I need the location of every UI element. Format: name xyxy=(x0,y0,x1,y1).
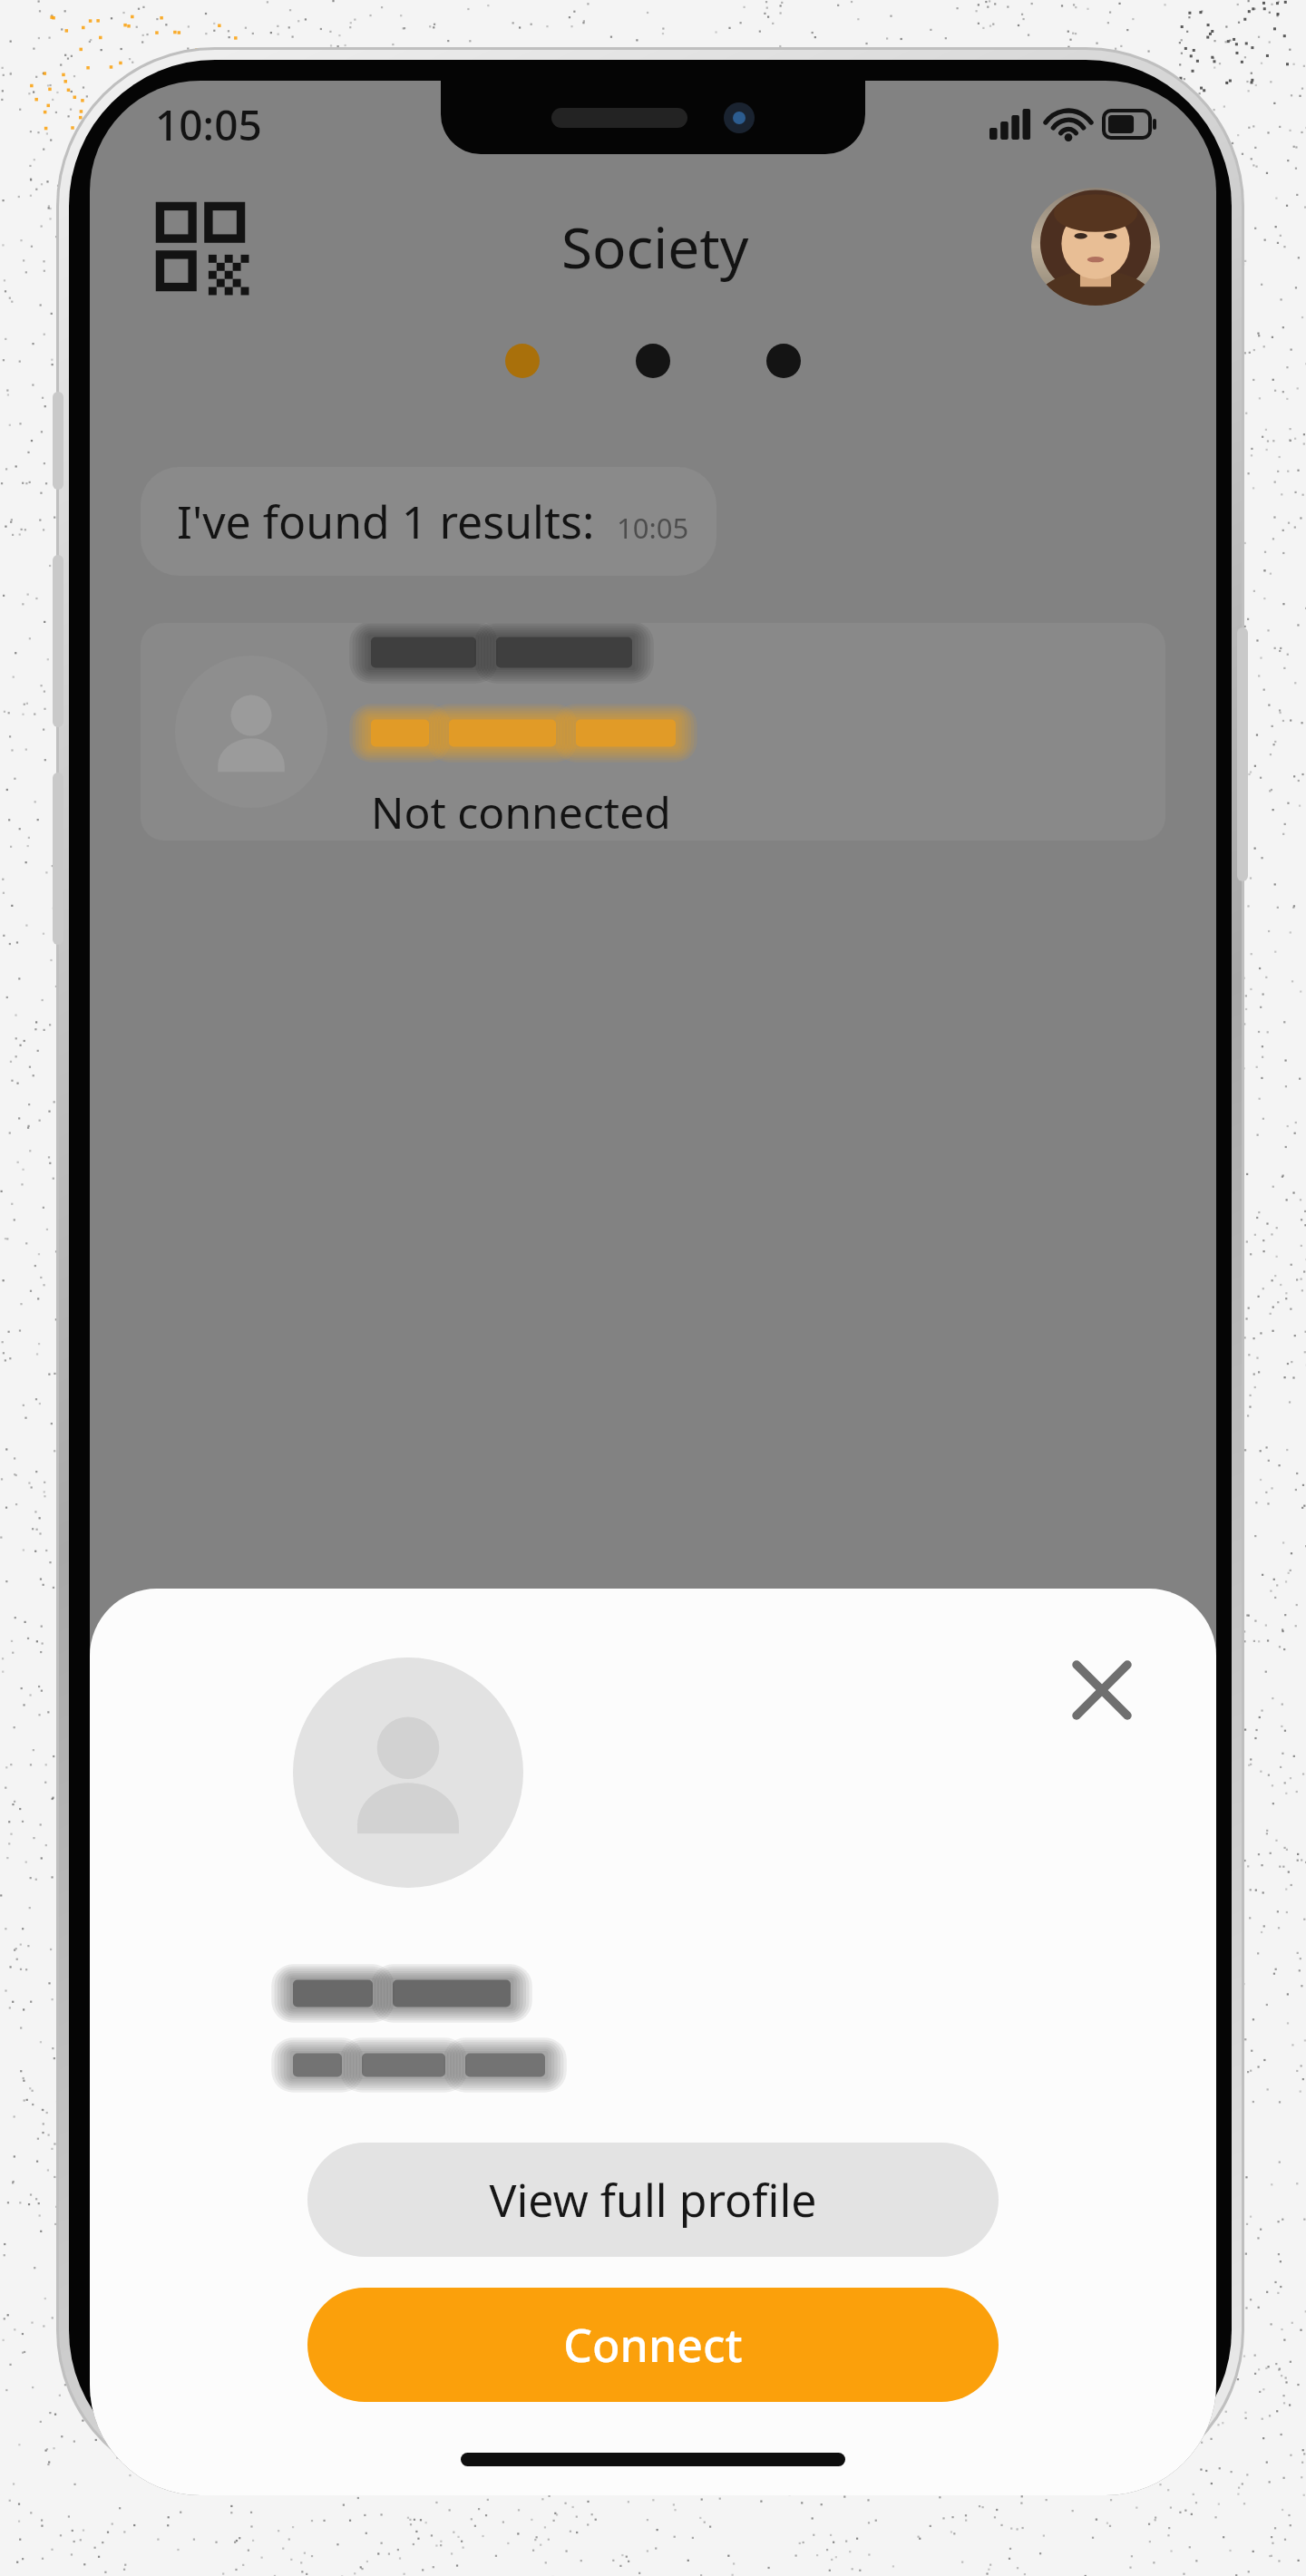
button[interactable]: Not connected xyxy=(141,623,1165,841)
button[interactable]: Page 3 xyxy=(766,344,801,378)
staticText: I've found 1 results: xyxy=(177,491,595,552)
staticText: Not connected xyxy=(371,783,671,841)
button[interactable]: Scan QR code xyxy=(150,196,251,297)
button[interactable]: Page 2 xyxy=(636,344,670,378)
staticText: Connect xyxy=(563,2314,743,2376)
staticText: 10:05 xyxy=(617,509,689,547)
staticText: Society xyxy=(561,209,749,285)
button[interactable]: Connect xyxy=(307,2288,999,2402)
button[interactable]: Close xyxy=(1058,1647,1145,1734)
button[interactable]: Profile picture xyxy=(293,1657,523,1888)
button[interactable]: Page 1 xyxy=(505,344,540,378)
button[interactable]: I've found 1 results: xyxy=(141,467,716,576)
staticText: 10:05 xyxy=(155,96,262,153)
button[interactable]: View full profile xyxy=(307,2143,999,2257)
staticText: View full profile xyxy=(489,2169,817,2231)
button[interactable]: Profile xyxy=(1031,188,1160,306)
